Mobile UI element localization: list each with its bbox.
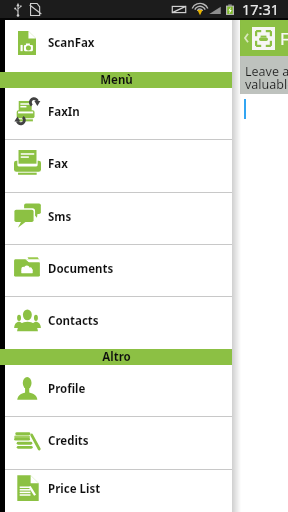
staticText: Menù: [100, 72, 133, 88]
button[interactable]: Contacts: [5, 297, 232, 349]
staticText: Leave a comment, it is valuable for us: [245, 63, 288, 93]
button[interactable]: Price List: [5, 470, 232, 512]
button[interactable]: Documents: [5, 245, 232, 297]
staticText: Altro: [102, 349, 131, 365]
staticText: Credits: [48, 433, 89, 449]
staticText: Documents: [48, 261, 114, 277]
button[interactable]: Fax: [5, 140, 232, 193]
staticText: ScanFax: [48, 35, 95, 51]
button[interactable]: FaxIn: [5, 88, 232, 140]
staticText: Profile: [48, 381, 86, 397]
staticText: Fax: [48, 156, 68, 172]
staticText: Price List: [48, 481, 101, 497]
button[interactable]: Sms: [5, 193, 232, 245]
staticText: FaxIn: [48, 104, 80, 120]
button[interactable]: Credits: [5, 417, 232, 470]
staticText: Fax: [280, 27, 288, 50]
staticText: 17:31: [242, 0, 280, 19]
staticText: Sms: [48, 209, 72, 225]
staticText: Contacts: [48, 313, 99, 329]
button[interactable]: Profile: [5, 365, 232, 417]
